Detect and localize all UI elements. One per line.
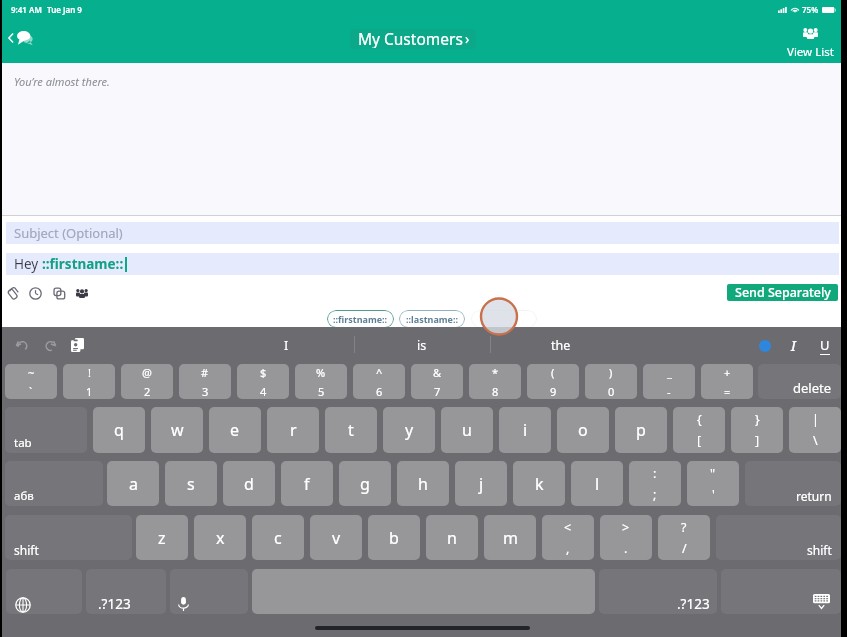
button[interactable]: Undo [16,340,28,351]
staticText: v [332,527,341,549]
staticText: 6 [376,384,383,399]
button[interactable]: v [310,515,362,560]
button[interactable]: tab [5,407,87,453]
button[interactable]: ) [585,364,637,399]
button[interactable]: Recipients [71,282,93,304]
button[interactable]: delete [758,364,841,399]
button[interactable]: u [441,407,493,453]
staticText: ! [88,365,91,380]
button[interactable]: _ [643,364,695,399]
button[interactable]: Redo [44,340,56,351]
button[interactable]: o [557,407,609,453]
button[interactable]: p [615,407,667,453]
button[interactable]: ( [527,364,579,399]
staticText: # [201,365,209,380]
button[interactable]: m [484,515,536,560]
button[interactable]: " [687,461,739,506]
button[interactable]: * [469,364,521,399]
button[interactable]: t [325,407,377,453]
button[interactable]: Templates [48,282,70,304]
button[interactable]: Hide keyboard [721,569,841,614]
button[interactable]: Italic [791,336,796,355]
button[interactable]: Hey [6,253,839,275]
button[interactable]: i [499,407,551,453]
button[interactable]: Bold [759,340,771,352]
button[interactable]: k [513,461,565,506]
button[interactable]: y [383,407,435,453]
staticText: , [566,540,570,557]
staticText: o [578,419,588,441]
button[interactable]: n [426,515,478,560]
button[interactable]: Send Separately [727,284,838,301]
staticText: Hey [14,255,42,273]
button[interactable]: Paste [71,338,84,352]
button[interactable]: @ [121,364,173,399]
staticText: › [465,29,470,48]
staticText: 0 [608,384,615,399]
button[interactable]: Back to conversations [5,29,36,47]
button[interactable]: d [223,461,275,506]
button[interactable]: & [411,364,463,399]
button[interactable]: .?123 [599,569,717,614]
button[interactable]: : [629,461,681,506]
button[interactable]: a [107,461,159,506]
staticText: ::firstname:: [42,255,124,273]
button[interactable]: View List [781,24,840,60]
button[interactable]: Dictate [170,569,248,614]
staticText: & [433,365,442,380]
button[interactable]: Underline [820,336,830,355]
staticText: > [622,519,630,536]
button[interactable]: ::lastname:: [399,310,465,328]
button[interactable]: shift [716,515,841,560]
button[interactable]: h [397,461,449,506]
button[interactable]: x [194,515,246,560]
button[interactable]: } [731,407,783,453]
button[interactable]: .?123 [86,569,166,614]
button[interactable]: ? [658,515,710,560]
staticText: 9:41 AM [11,4,42,15]
button[interactable]: z [136,515,188,560]
button[interactable]: ~ [5,364,57,399]
button[interactable]: j [455,461,507,506]
button[interactable]: Attach file [2,282,24,304]
staticText: ~ [28,365,35,380]
button[interactable]: s [165,461,217,506]
button[interactable]: My Customers [350,29,476,49]
button[interactable]: g [339,461,391,506]
staticText: - [667,384,671,399]
button[interactable]: l [571,461,623,506]
staticText: m [503,527,518,549]
button[interactable]: r [267,407,319,453]
staticText: You’re almost there. [14,74,110,89]
button[interactable]: $ [237,364,289,399]
button[interactable]: Change keyboard [6,569,82,614]
button[interactable]: shift [5,515,132,560]
staticText: I [791,336,796,355]
button[interactable]: Schedule send [24,282,46,304]
button[interactable]: e [209,407,261,453]
button[interactable]: ::firstname:: [327,310,394,328]
button[interactable]: % [295,364,347,399]
staticText: y [405,419,414,441]
button[interactable]: f [281,461,333,506]
staticText: 2 [144,384,151,399]
button[interactable]: return [745,461,841,506]
staticText: 1 [86,384,93,399]
button[interactable]: b [368,515,420,560]
button[interactable]: { [673,407,725,453]
button[interactable]: | [789,407,841,453]
button[interactable]: q [93,407,145,453]
button[interactable]: w [151,407,203,453]
button[interactable]: ! [63,364,115,399]
button[interactable]: + [701,364,753,399]
button[interactable]: > [600,515,652,560]
button[interactable]: # [179,364,231,399]
button[interactable]: ^ [353,364,405,399]
button[interactable]: абв [5,461,103,506]
button[interactable]: c [252,515,304,560]
staticText: n [447,527,457,549]
button[interactable]: < [542,515,594,560]
button[interactable]: Subject (Optional) [6,222,839,244]
staticText: f [304,473,310,495]
